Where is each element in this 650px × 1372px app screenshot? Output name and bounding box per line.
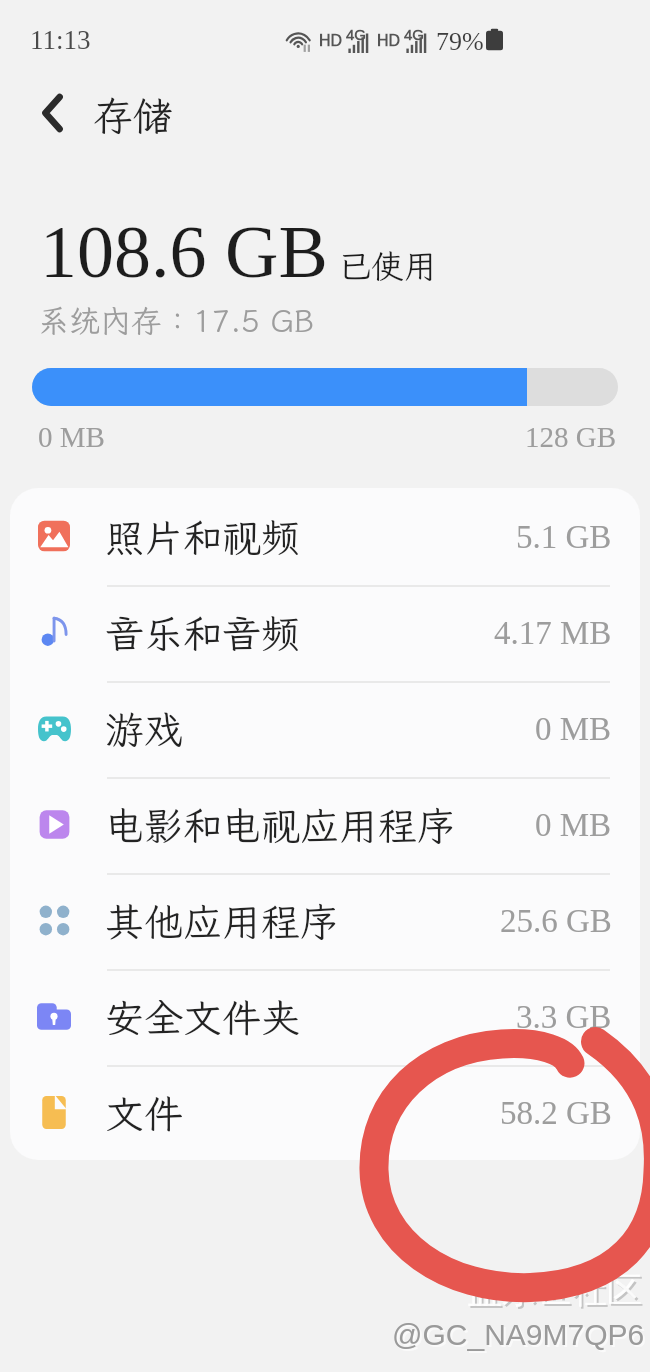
staticText: @GC_NA9M7QP6	[394, 1320, 647, 1354]
staticText: 4.17 MB	[494, 615, 612, 652]
staticText: 0 MB	[535, 711, 612, 748]
staticText: 安全文件夹	[105, 992, 301, 1043]
staticText: 128 GB	[525, 421, 617, 453]
button[interactable]: 音乐和音频	[10, 584, 640, 680]
button[interactable]: 文件	[10, 1064, 640, 1160]
staticText: 电影和电视应用程序	[105, 800, 457, 851]
staticText: HD	[319, 32, 343, 50]
staticText: 0 MB	[38, 421, 105, 453]
staticText: 4G	[404, 26, 425, 43]
staticText: 盖乐世社区	[467, 1268, 642, 1312]
staticText: 25.6 GB	[500, 903, 612, 940]
staticText: 58.2 GB	[500, 1095, 612, 1132]
staticText: 已使用	[338, 244, 437, 287]
staticText: 3.3 GB	[516, 999, 612, 1036]
button[interactable]: 照片和视频	[10, 488, 640, 584]
button[interactable]: 游戏	[10, 680, 640, 776]
staticText: 108.6 GB	[40, 211, 328, 293]
staticText: 11:13	[30, 25, 91, 55]
staticText: 其他应用程序	[105, 896, 340, 947]
staticText: 游戏	[105, 704, 184, 755]
staticText: 文件	[105, 1088, 184, 1139]
button[interactable]: Back	[18, 74, 86, 152]
button[interactable]: 电影和电视应用程序	[10, 776, 640, 872]
staticText: 存储	[93, 89, 173, 142]
button[interactable]: 安全文件夹	[10, 968, 640, 1064]
staticText: HD	[377, 32, 401, 50]
staticText: 5.1 GB	[516, 519, 612, 556]
staticText: 0 MB	[535, 807, 612, 844]
staticText: 79%	[436, 27, 484, 56]
button[interactable]: 其他应用程序	[10, 872, 640, 968]
staticText: 音乐和音频	[105, 608, 301, 659]
staticText: @GC_NA9M7QP6	[392, 1318, 645, 1352]
staticText: 照片和视频	[105, 512, 301, 563]
staticText: 4G	[346, 26, 367, 43]
staticText: 盖乐世社区	[469, 1270, 644, 1314]
staticText: 系统内存：17.5 GB	[38, 300, 314, 341]
